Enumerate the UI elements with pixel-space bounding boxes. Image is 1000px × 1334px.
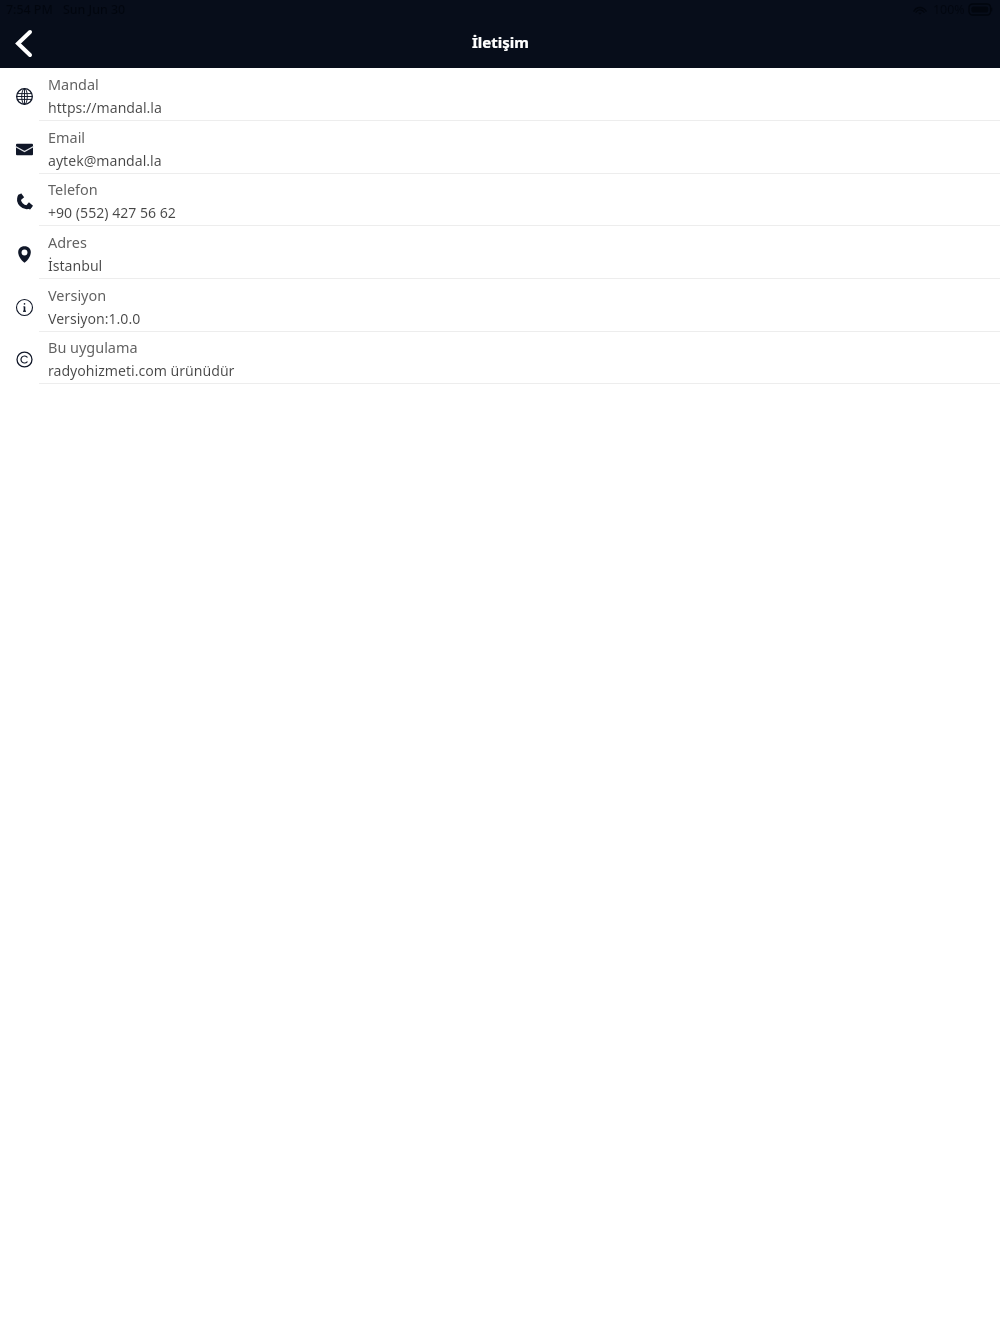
staticText: https://mandal.la [48,98,162,117]
staticText: Sun Jun 30 [63,1,126,18]
staticText: İletişim [472,32,529,52]
staticText: Mandal [48,75,99,95]
button[interactable]: Versiyon [0,279,1000,332]
staticText: radyohizmeti.com ürünüdür [48,361,235,380]
staticText: 7:54 PM [6,1,53,18]
staticText: Telefon [48,180,98,200]
staticText: Versiyon:1.0.0 [48,309,141,328]
button[interactable]: Back [0,19,48,67]
staticText: Bu uygulama [48,338,138,358]
staticText: İstanbul [48,256,103,275]
button[interactable]: Email [0,121,1000,174]
staticText: Email [48,128,86,148]
staticText: Versiyon [48,286,107,306]
button[interactable]: Adres [0,226,1000,279]
staticText: aytek@mandal.la [48,151,162,170]
button[interactable]: Bu uygulama [0,331,1000,384]
staticText: 100% [933,1,965,18]
staticText: +90 (552) 427 56 62 [48,203,176,222]
button[interactable]: Telefon [0,173,1000,226]
button[interactable]: Mandal [0,68,1000,121]
staticText: Adres [48,233,87,253]
